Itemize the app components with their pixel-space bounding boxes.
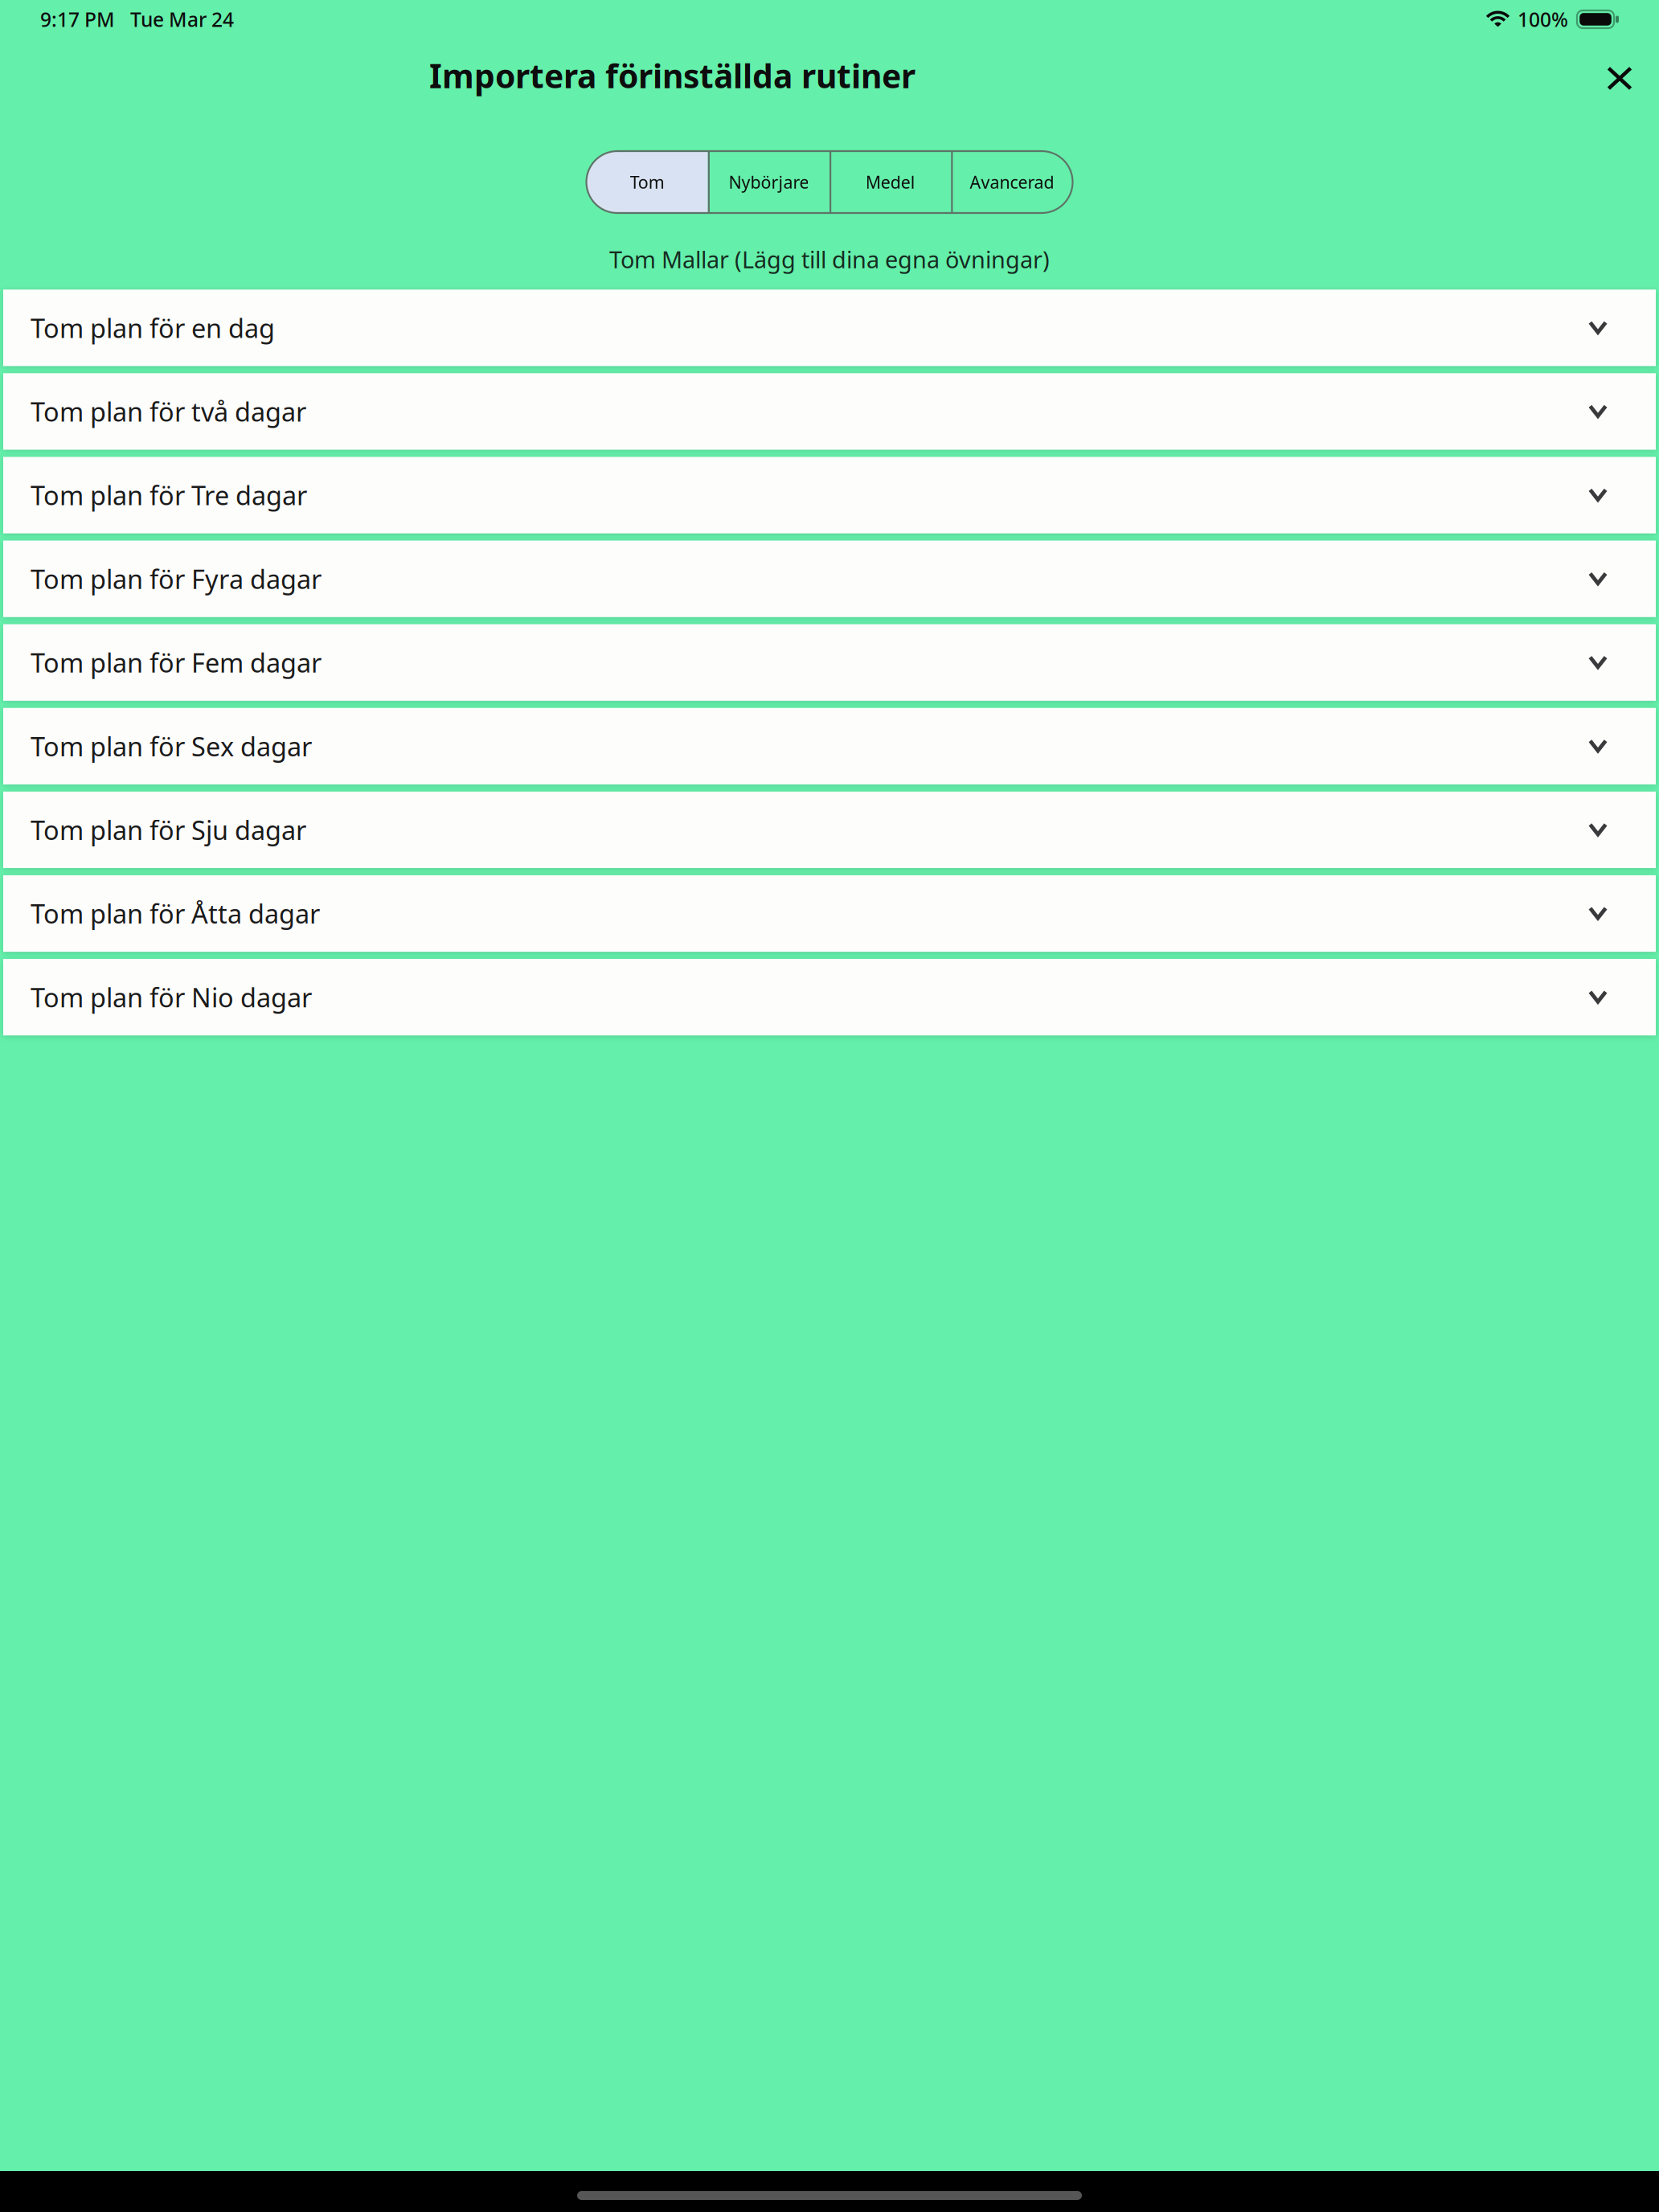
button[interactable]: Tom plan för Fem dagar — [3, 624, 1656, 701]
staticText: Importera förinställda rutiner — [429, 53, 916, 98]
button[interactable]: Tom plan för Sex dagar — [3, 708, 1656, 784]
button[interactable]: Avancerad — [951, 151, 1073, 213]
staticText: Tom plan för en dag — [31, 310, 275, 346]
staticText: Avancerad — [970, 170, 1054, 194]
button[interactable]: Stäng — [1591, 44, 1649, 107]
staticText: Tom plan för Sex dagar — [31, 728, 312, 764]
staticText: Tom Mallar (Lägg till dina egna övningar… — [609, 244, 1050, 275]
button[interactable]: Medel — [829, 151, 951, 213]
staticText: Tom plan för Fem dagar — [31, 645, 322, 680]
button[interactable]: Nybörjare — [708, 151, 829, 213]
button[interactable]: Tom — [586, 151, 708, 213]
staticText: Tom — [630, 170, 664, 194]
button[interactable]: Tom plan för en dag — [3, 290, 1656, 366]
staticText: Medel — [865, 170, 915, 194]
staticText: Tom plan för Sju dagar — [31, 812, 306, 848]
button[interactable]: Tom plan för Åtta dagar — [3, 875, 1656, 952]
button[interactable]: Tom plan för Tre dagar — [3, 457, 1656, 533]
button[interactable]: Tom plan för Nio dagar — [3, 959, 1656, 1035]
staticText: Tue Mar 24 — [130, 6, 234, 33]
staticText: 100% — [1518, 6, 1568, 33]
button[interactable]: Tom plan för Sju dagar — [3, 792, 1656, 868]
staticText: 9:17 PM — [40, 6, 115, 33]
button[interactable]: Tom plan för två dagar — [3, 373, 1656, 450]
staticText: Tom plan för Tre dagar — [31, 477, 307, 513]
staticText: Nybörjare — [729, 170, 809, 194]
staticText: Tom plan för Nio dagar — [31, 979, 312, 1015]
staticText: Tom plan för Åtta dagar — [31, 896, 320, 931]
button[interactable]: Tom plan för Fyra dagar — [3, 541, 1656, 617]
staticText: Tom plan för två dagar — [31, 394, 306, 429]
staticText: Tom plan för Fyra dagar — [31, 561, 322, 597]
